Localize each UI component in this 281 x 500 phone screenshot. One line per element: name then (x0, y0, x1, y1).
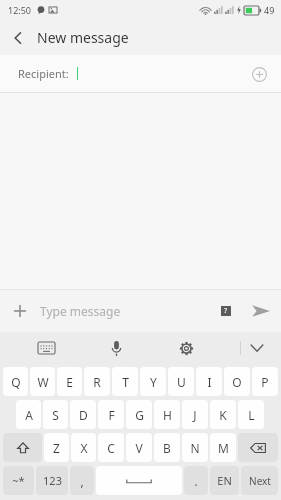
button[interactable]: L (238, 400, 264, 429)
button[interactable]: EN (210, 466, 239, 495)
button[interactable]: Emoji (211, 296, 241, 326)
staticText: , (80, 473, 84, 489)
button[interactable]: F (98, 400, 124, 429)
button[interactable]: 123 (36, 466, 68, 495)
staticText: Q (11, 374, 21, 390)
button[interactable]: Add attachment (0, 291, 40, 331)
staticText: New message (37, 28, 129, 47)
staticText: U (177, 374, 186, 390)
staticText: X (80, 440, 88, 456)
staticText: K (219, 407, 227, 423)
staticText: R (93, 374, 101, 390)
button[interactable]: T (112, 367, 138, 396)
button[interactable]: J (182, 400, 208, 429)
button[interactable]: M (210, 433, 236, 462)
staticText: Next (249, 474, 271, 488)
button[interactable]: N (182, 433, 208, 462)
button[interactable]: A (16, 400, 41, 429)
staticText: F (108, 407, 115, 423)
button[interactable]: ~* (3, 466, 34, 495)
staticText: N (190, 440, 200, 456)
staticText: M (218, 440, 229, 456)
button[interactable]: O (224, 367, 250, 396)
button[interactable]: P (252, 367, 278, 396)
button[interactable]: R (84, 367, 110, 396)
staticText: Y (150, 374, 157, 390)
staticText: L (248, 407, 255, 423)
button[interactable]: Backspace (238, 433, 278, 462)
button[interactable]: Z (44, 433, 69, 462)
button[interactable]: Type message (40, 290, 211, 332)
button[interactable]: Voice input (100, 332, 132, 364)
button[interactable]: Shift (3, 433, 42, 462)
staticText: E (66, 374, 73, 390)
button[interactable]: Add recipient (247, 62, 271, 86)
staticText: . (194, 473, 198, 489)
button[interactable]: C (98, 433, 124, 462)
staticText: S (52, 407, 59, 423)
staticText: Type message (40, 303, 121, 319)
button[interactable]: Keyboard layout (30, 332, 62, 364)
staticText: G (135, 407, 144, 423)
staticText: D (79, 407, 88, 423)
button[interactable]: D (70, 400, 96, 429)
button[interactable]: Back (0, 20, 35, 55)
button[interactable]: V (126, 433, 152, 462)
button[interactable]: Recipient: (0, 55, 281, 92)
button[interactable]: , (70, 466, 94, 495)
button[interactable]: H (154, 400, 180, 429)
button[interactable]: G (126, 400, 152, 429)
button[interactable]: Space (96, 466, 182, 495)
button[interactable]: . (184, 466, 208, 495)
staticText: Recipient: (18, 66, 69, 81)
staticText: ? (224, 306, 228, 316)
button[interactable]: Send (241, 291, 281, 331)
button[interactable]: W (30, 367, 55, 396)
button[interactable]: Keyboard settings (170, 332, 202, 364)
button[interactable]: K (210, 400, 236, 429)
button[interactable]: Q (3, 367, 28, 396)
staticText: H (163, 407, 172, 423)
button[interactable]: Y (140, 367, 166, 396)
button[interactable]: I (196, 367, 222, 396)
button[interactable]: Hide keyboard (241, 332, 273, 364)
staticText: C (107, 440, 115, 456)
staticText: P (261, 374, 269, 390)
button[interactable]: U (168, 367, 194, 396)
button[interactable]: X (71, 433, 96, 462)
button[interactable]: B (154, 433, 180, 462)
staticText: EN (217, 473, 232, 488)
button[interactable]: S (43, 400, 68, 429)
staticText: 123 (43, 473, 62, 488)
button[interactable]: E (57, 367, 82, 396)
staticText: B (163, 440, 171, 456)
staticText: O (232, 374, 242, 390)
staticText: ~* (12, 473, 25, 488)
staticText: W (37, 374, 49, 390)
staticText: 49 (264, 4, 275, 16)
staticText: J (193, 407, 197, 423)
staticText: A (25, 407, 33, 423)
staticText: T (122, 374, 129, 390)
staticText: I (207, 374, 212, 390)
staticText: Z (53, 440, 60, 456)
staticText: 12:50 (8, 4, 32, 16)
staticText: V (135, 440, 143, 456)
button[interactable]: Next (241, 466, 278, 495)
